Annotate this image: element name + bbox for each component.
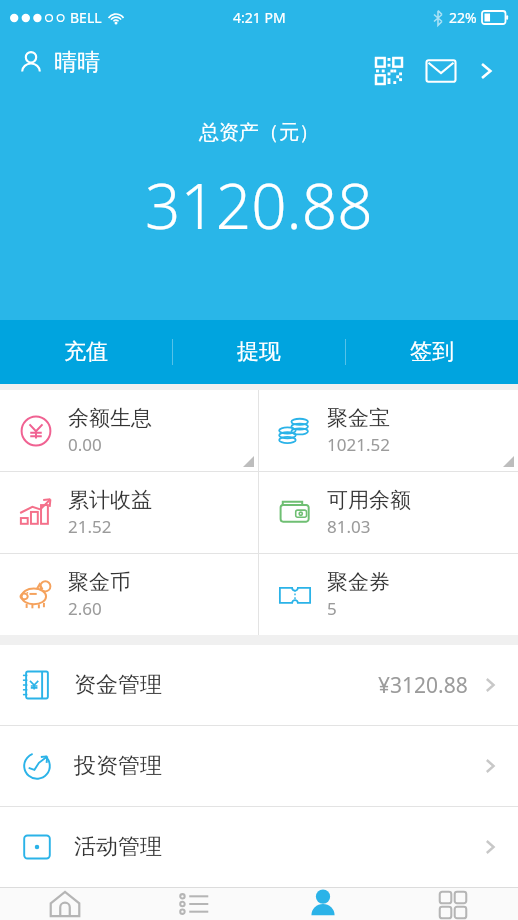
button[interactable]: 累计收益 (0, 472, 258, 553)
staticText: 聚金宝 (327, 405, 390, 431)
staticText: 聚金币 (68, 569, 131, 595)
button[interactable]: 聚金券 (259, 554, 518, 635)
button[interactable]: 投资 (129, 888, 258, 920)
staticText: 3120.88 (145, 163, 373, 247)
staticText: 充值 (64, 338, 108, 366)
staticText: ¥3120.88 (378, 671, 468, 700)
button[interactable]: 余额生息 (0, 390, 258, 471)
button[interactable]: 聚金币 (0, 554, 258, 635)
button[interactable]: 资金管理 (0, 645, 518, 725)
staticText: 聚金券 (327, 569, 390, 595)
staticText: 投资管理 (74, 752, 162, 780)
staticText: 2.60 (68, 597, 102, 620)
button[interactable]: 可用余额 (259, 472, 518, 553)
staticText: 晴晴 (54, 48, 100, 77)
button[interactable]: Scan QR code (368, 50, 410, 92)
button[interactable]: 提现 (173, 320, 345, 384)
button[interactable]: 投资管理 (0, 726, 518, 806)
button[interactable]: 晴晴 (18, 48, 100, 77)
button[interactable]: 聚金宝 (259, 390, 518, 471)
button[interactable]: 主页 (0, 888, 129, 920)
button[interactable]: Messages (420, 50, 462, 92)
staticText: 可用余额 (327, 487, 411, 513)
staticText: 累计收益 (68, 487, 152, 513)
staticText: 4:21 PM (233, 8, 286, 27)
button[interactable]: 签到 (346, 320, 518, 384)
staticText: 活动管理 (74, 833, 162, 861)
staticText: 资金管理 (74, 671, 162, 699)
staticText: 总资产（元） (199, 120, 319, 145)
staticText: 5 (327, 597, 337, 620)
staticText: 0.00 (68, 433, 102, 456)
staticText: 81.03 (327, 515, 371, 538)
staticText: 1021.52 (327, 433, 390, 456)
staticText: 21.52 (68, 515, 112, 538)
button[interactable]: More (466, 51, 506, 91)
staticText: 余额生息 (68, 405, 152, 431)
staticText: BELL (70, 8, 102, 27)
button[interactable]: 账户 (258, 888, 388, 920)
button[interactable]: 充值 (0, 320, 172, 384)
staticText: 提现 (237, 338, 281, 366)
staticText: 22% (449, 8, 477, 27)
button[interactable]: 更多 (388, 888, 518, 920)
staticText: 签到 (410, 338, 454, 366)
button[interactable]: 活动管理 (0, 807, 518, 887)
